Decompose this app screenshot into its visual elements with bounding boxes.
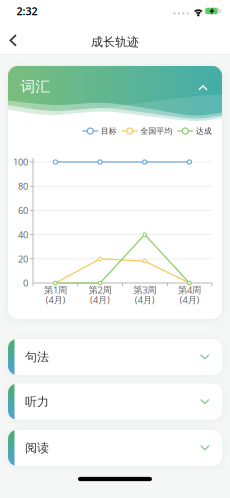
staticText: 目标 [101,126,117,136]
staticText: 全国平均 [140,126,172,136]
staticText: (4月) [90,294,110,306]
button[interactable]: 听力 [8,384,222,420]
button[interactable]: 句法 [8,339,222,375]
staticText: 80 [18,180,28,192]
button[interactable]: 阅读 [8,430,222,466]
staticText: 100 [13,156,28,168]
staticText: 第2周 [89,284,112,296]
staticText: 60 [18,204,28,217]
staticText: 达成 [196,126,212,136]
staticText: 第3周 [133,284,156,296]
staticText: 2:32 [16,4,37,18]
staticText: (4月) [45,294,65,306]
staticText: (4月) [179,294,199,306]
staticText: 听力 [25,394,49,409]
staticText: 0 [23,277,28,289]
staticText: 第4周 [178,284,201,296]
staticText: 第1周 [44,284,67,296]
staticText: 阅读 [25,440,49,455]
button[interactable]: 词汇 收起 [8,66,222,132]
staticText: 20 [18,253,28,265]
staticText: (4月) [135,294,155,306]
staticText: 成长轨迹 [91,35,139,49]
button[interactable]: Back [5,32,21,48]
staticText: 句法 [25,350,49,364]
staticText: 40 [18,228,28,241]
staticText: 词汇 [20,78,50,96]
